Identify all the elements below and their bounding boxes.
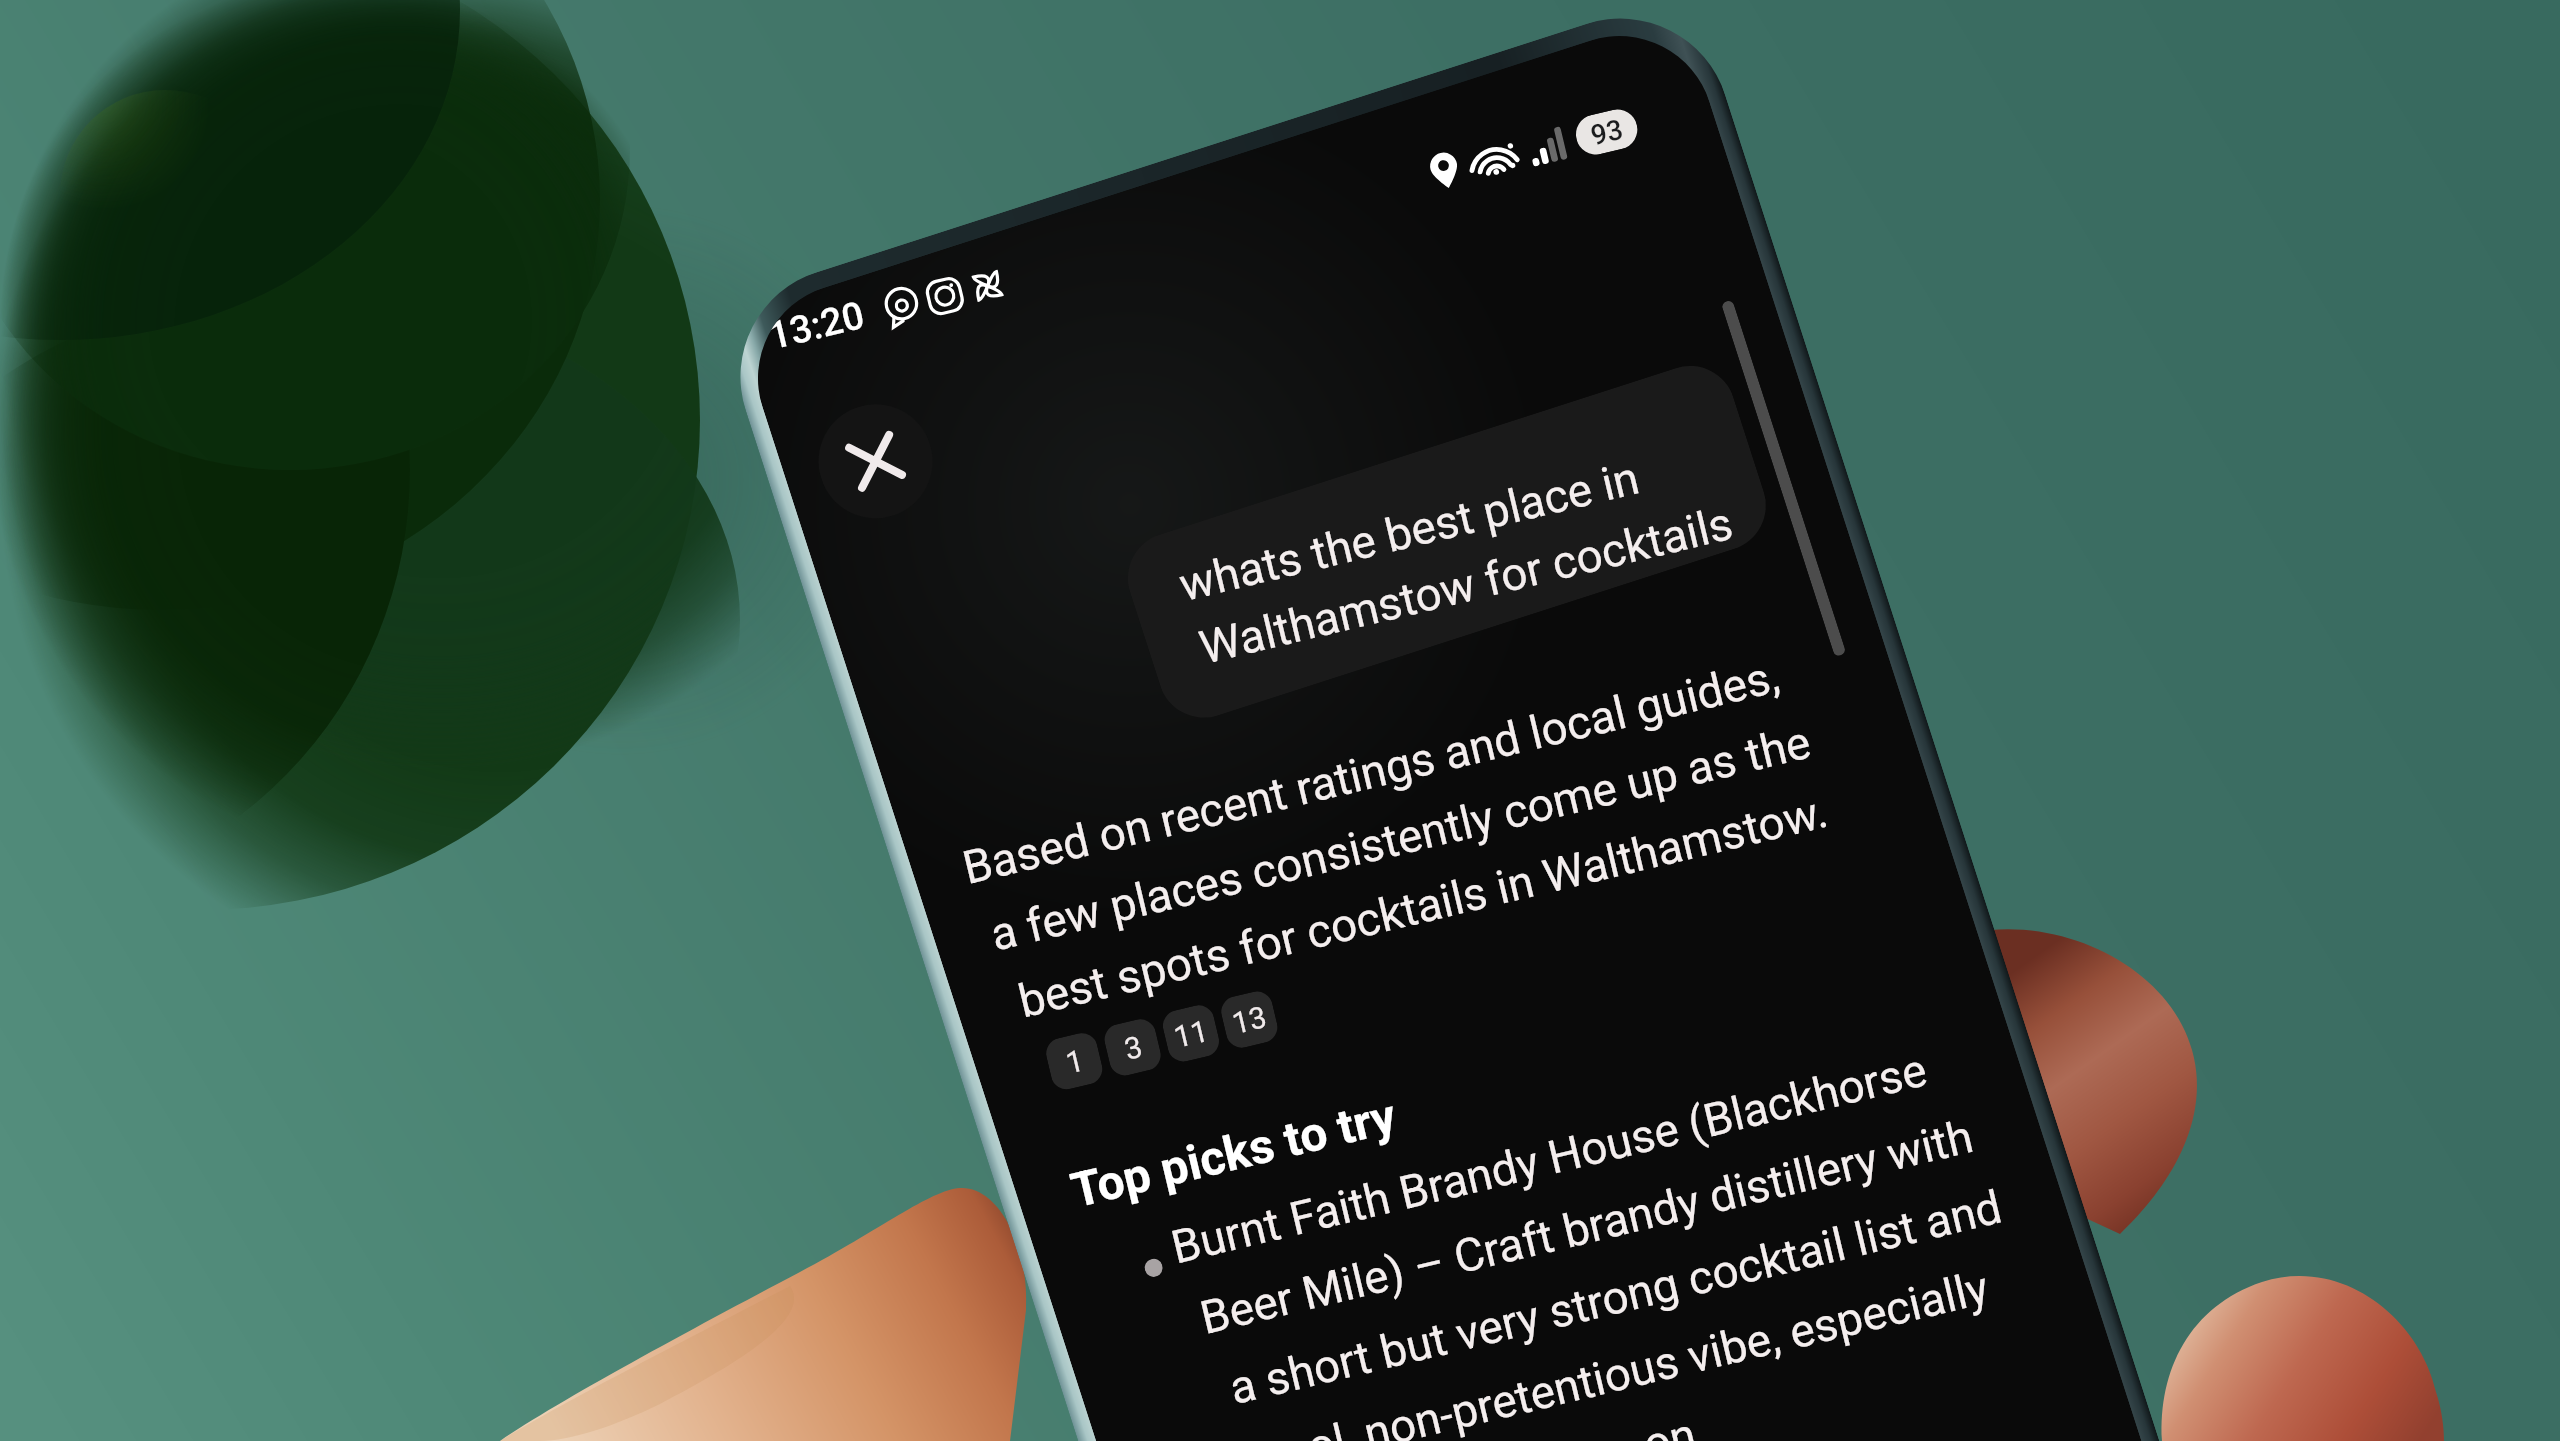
- button[interactable]: [1116, 354, 1778, 729]
- staticText: 93: [1585, 110, 1629, 155]
- staticText: like brandy twists on: [1278, 1376, 1705, 1441]
- staticText: Top picks to try: [1061, 1062, 1406, 1243]
- button[interactable]: 13: [1214, 984, 1285, 1055]
- staticText: Beer Mile) – Craft brandy distillery wit…: [1191, 1050, 1982, 1404]
- staticText: 11: [1168, 1010, 1214, 1057]
- staticText: whats the best place in: [1170, 415, 1649, 647]
- staticText: a few places consistently come up as the: [981, 652, 1820, 1024]
- staticText: 13: [1226, 997, 1273, 1044]
- button[interactable]: 3: [1097, 1012, 1168, 1082]
- staticText: best spots for cocktails in Walthamstow.: [1009, 722, 1837, 1090]
- button[interactable]: 1: [1039, 1026, 1109, 1096]
- button[interactable]: Close: [804, 389, 947, 533]
- staticText: Walthamstow for cocktails: [1190, 455, 1742, 715]
- staticText: 1: [1060, 1041, 1090, 1082]
- staticText: Based on recent ratings and local guides…: [954, 586, 1788, 957]
- staticText: 3: [1118, 1027, 1148, 1068]
- staticText: 13:20: [761, 286, 872, 366]
- staticText: a short but very strong cocktail list an…: [1220, 1120, 2011, 1441]
- button[interactable]: 11: [1156, 998, 1226, 1069]
- staticText: cool, non-pretentious vibe, especially: [1249, 1204, 1998, 1441]
- staticText: Burnt Faith Brandy House (Blackhorse: [1162, 985, 1937, 1332]
